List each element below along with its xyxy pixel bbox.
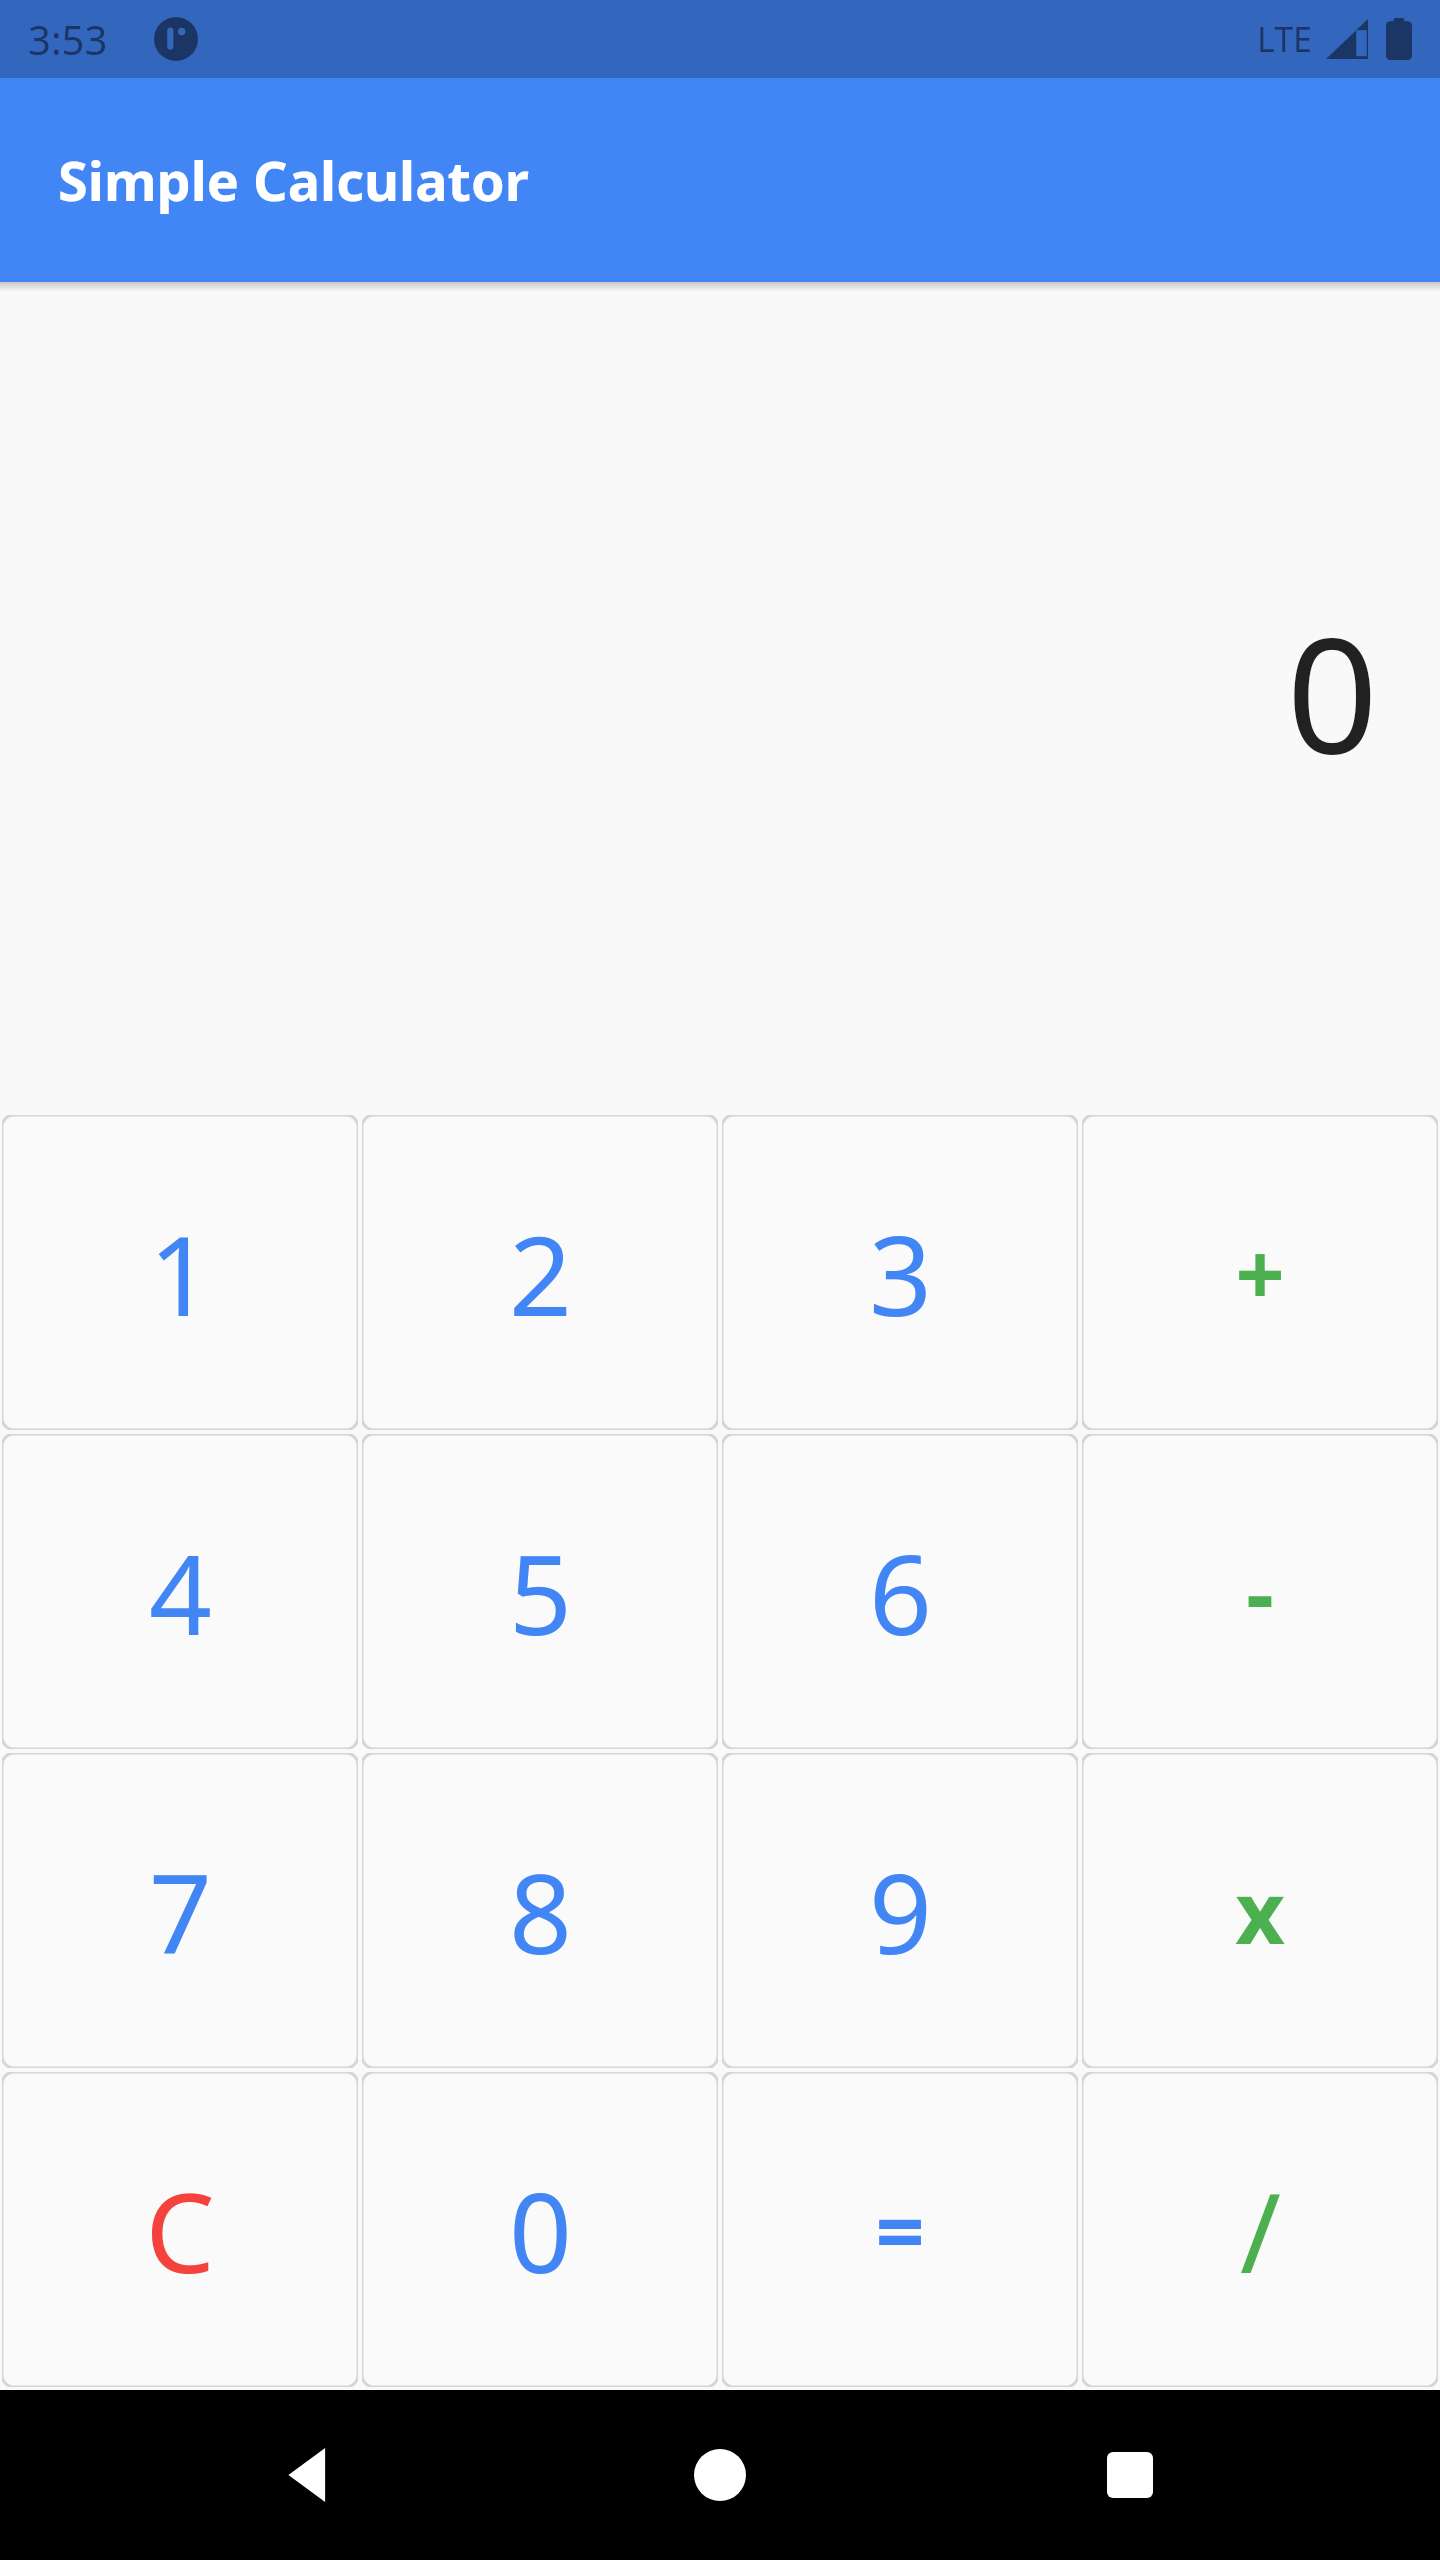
button[interactable]: 5 bbox=[362, 1434, 718, 1749]
staticText: LTE bbox=[1257, 16, 1312, 62]
button[interactable]: 2 bbox=[362, 1115, 718, 1430]
staticText: 8 bbox=[509, 1836, 572, 1986]
staticText: 2 bbox=[509, 1198, 572, 1348]
staticText: C bbox=[145, 2155, 215, 2305]
staticText: 1 bbox=[149, 1198, 212, 1348]
staticText: 6 bbox=[869, 1517, 932, 1667]
button[interactable]: 1 bbox=[2, 1115, 358, 1430]
staticText: 7 bbox=[149, 1836, 212, 1986]
button[interactable]: 8 bbox=[362, 1753, 718, 2068]
staticText: 3 bbox=[869, 1198, 932, 1348]
button[interactable]: + bbox=[1082, 1115, 1438, 1430]
staticText: 5 bbox=[509, 1517, 572, 1667]
staticText: / bbox=[1240, 2155, 1281, 2305]
staticText: Simple Calculator bbox=[58, 143, 529, 217]
button[interactable]: - bbox=[1082, 1434, 1438, 1749]
staticText: 9 bbox=[869, 1836, 932, 1986]
staticText: - bbox=[1246, 1533, 1274, 1650]
button[interactable]: x bbox=[1082, 1753, 1438, 2068]
staticText: 3:53 bbox=[28, 12, 108, 66]
staticText: 0 bbox=[509, 2155, 572, 2305]
button[interactable]: Recent apps bbox=[1030, 2390, 1230, 2560]
button[interactable]: 0 bbox=[362, 2072, 718, 2387]
button[interactable]: = bbox=[722, 2072, 1078, 2387]
staticText: 4 bbox=[149, 1517, 212, 1667]
button[interactable]: Home bbox=[620, 2390, 820, 2560]
button[interactable]: 6 bbox=[722, 1434, 1078, 1749]
button[interactable]: 7 bbox=[2, 1753, 358, 2068]
button[interactable]: / bbox=[1082, 2072, 1438, 2387]
staticText: 0 bbox=[1286, 582, 1378, 800]
button[interactable]: 4 bbox=[2, 1434, 358, 1749]
button[interactable]: 3 bbox=[722, 1115, 1078, 1430]
staticText: x bbox=[1235, 1852, 1285, 1969]
staticText: + bbox=[1235, 1214, 1285, 1331]
staticText: = bbox=[875, 2171, 925, 2288]
button[interactable]: 9 bbox=[722, 1753, 1078, 2068]
button[interactable]: Back bbox=[210, 2390, 410, 2560]
button[interactable]: C bbox=[2, 2072, 358, 2387]
